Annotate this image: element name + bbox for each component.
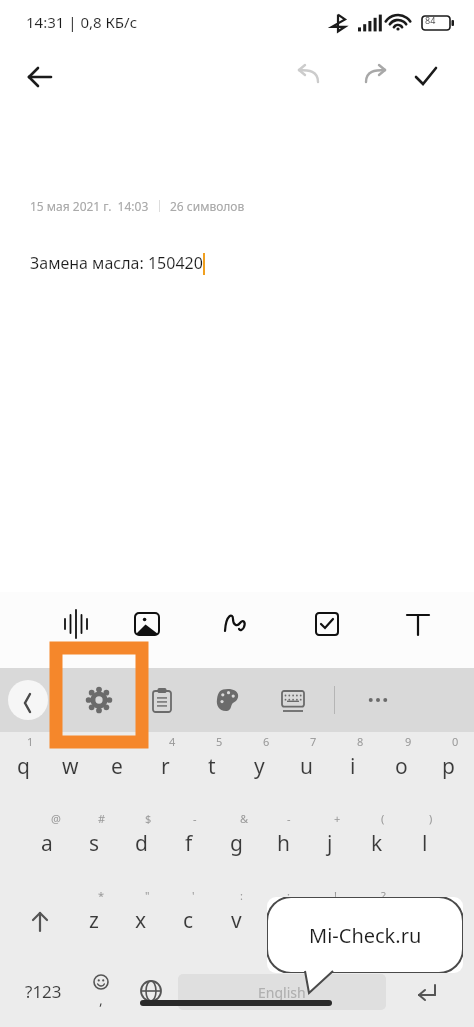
button[interactable]: ?123 bbox=[10, 968, 76, 1014]
staticText: t bbox=[208, 752, 216, 781]
staticText: 7 bbox=[310, 734, 317, 749]
button[interactable]: k bbox=[354, 813, 400, 865]
staticText: g bbox=[230, 829, 243, 858]
button[interactable]: Emoji bbox=[76, 968, 126, 1014]
button[interactable]: Keyboard layout bbox=[271, 678, 315, 722]
staticText: 1 bbox=[27, 734, 34, 749]
button[interactable]: Enter bbox=[392, 968, 462, 1014]
button[interactable]: e bbox=[94, 736, 140, 788]
button[interactable]: Previous bbox=[8, 680, 48, 720]
button[interactable]: v bbox=[213, 890, 259, 942]
staticText: h bbox=[277, 829, 290, 858]
staticText: 5 bbox=[216, 734, 223, 749]
button[interactable]: x bbox=[118, 890, 164, 942]
staticText: 2 bbox=[74, 734, 81, 749]
staticText: @ bbox=[51, 811, 61, 826]
staticText: f bbox=[185, 829, 193, 858]
button[interactable]: j bbox=[307, 813, 353, 865]
button[interactable]: More bbox=[356, 678, 400, 722]
button[interactable]: a bbox=[24, 813, 70, 865]
staticText: Mi-Check.ru bbox=[309, 922, 422, 949]
button[interactable]: Voice bbox=[52, 600, 100, 648]
staticText: q bbox=[17, 752, 30, 781]
staticText: & bbox=[240, 811, 249, 826]
staticText: w bbox=[62, 752, 79, 781]
button[interactable]: z bbox=[71, 890, 117, 942]
staticText: y bbox=[254, 752, 265, 781]
staticText: u bbox=[300, 752, 313, 781]
staticText: e bbox=[111, 752, 123, 781]
button[interactable]: p bbox=[425, 736, 471, 788]
button[interactable]: Save bbox=[404, 55, 448, 99]
staticText: x bbox=[135, 906, 147, 935]
button[interactable]: q bbox=[0, 736, 46, 788]
button[interactable]: i bbox=[330, 736, 376, 788]
staticText: o bbox=[395, 752, 408, 781]
button[interactable]: Theme bbox=[206, 678, 250, 722]
button[interactable]: English bbox=[178, 974, 386, 1010]
button[interactable]: c bbox=[165, 890, 211, 942]
staticText: English bbox=[258, 983, 306, 1002]
staticText: k bbox=[371, 829, 383, 858]
button[interactable]: Back bbox=[18, 55, 62, 99]
button[interactable]: w bbox=[47, 736, 93, 788]
staticText: 84 bbox=[425, 14, 436, 26]
staticText: d bbox=[135, 829, 148, 858]
button[interactable]: l bbox=[402, 813, 448, 865]
staticText: l bbox=[422, 829, 428, 858]
staticText: 15 мая 2021 г. 14:03 bbox=[30, 198, 149, 214]
staticText: ; bbox=[287, 888, 290, 903]
staticText: 26 символов bbox=[170, 198, 245, 214]
staticText: p bbox=[442, 752, 455, 781]
button[interactable]: h bbox=[260, 813, 306, 865]
button[interactable]: y bbox=[236, 736, 282, 788]
staticText: n bbox=[324, 906, 337, 935]
staticText: Замена масла: 150420 bbox=[30, 252, 203, 274]
staticText: ?123 bbox=[25, 980, 62, 1003]
staticText: a bbox=[41, 829, 53, 858]
staticText: 0 bbox=[452, 734, 459, 749]
staticText: v bbox=[231, 906, 242, 935]
button[interactable]: t bbox=[189, 736, 235, 788]
staticText: j bbox=[327, 829, 333, 858]
staticText: $ bbox=[145, 811, 152, 826]
button[interactable]: n bbox=[307, 890, 353, 942]
staticText: ' bbox=[192, 888, 195, 903]
staticText: ) bbox=[429, 811, 433, 826]
button[interactable]: Image bbox=[123, 600, 171, 648]
button[interactable]: u bbox=[283, 736, 329, 788]
staticText: ? bbox=[381, 888, 386, 903]
staticText: - bbox=[287, 811, 291, 826]
button[interactable]: Settings bbox=[77, 678, 121, 722]
staticText: s bbox=[89, 829, 100, 858]
button[interactable]: f bbox=[166, 813, 212, 865]
staticText: c bbox=[183, 906, 194, 935]
button[interactable]: Shift bbox=[12, 896, 68, 948]
staticText: r bbox=[161, 752, 170, 781]
staticText: z bbox=[89, 906, 99, 935]
button[interactable]: Backspace bbox=[408, 896, 464, 948]
staticText: * bbox=[98, 888, 105, 903]
button[interactable]: o bbox=[378, 736, 424, 788]
button[interactable]: m bbox=[354, 890, 400, 942]
button[interactable]: Redo bbox=[354, 55, 398, 99]
button[interactable]: Change language bbox=[126, 968, 176, 1014]
button[interactable]: g bbox=[213, 813, 259, 865]
staticText: 6 bbox=[263, 734, 270, 749]
button[interactable]: Undo bbox=[286, 55, 330, 99]
button[interactable]: Checklist bbox=[303, 600, 351, 648]
button[interactable]: d bbox=[118, 813, 164, 865]
button[interactable]: b bbox=[260, 890, 306, 942]
staticText: + bbox=[334, 811, 341, 826]
button[interactable]: Text format bbox=[394, 600, 442, 648]
button[interactable]: r bbox=[142, 736, 188, 788]
staticText: 8 bbox=[357, 734, 364, 749]
staticText: 9 bbox=[405, 734, 412, 749]
button[interactable]: s bbox=[71, 813, 117, 865]
staticText: - bbox=[193, 811, 197, 826]
button[interactable]: Draw bbox=[212, 600, 260, 648]
button[interactable]: Clipboard bbox=[140, 678, 184, 722]
staticText: ( bbox=[381, 811, 385, 826]
staticText: 14:31 | 0,8 КБ/с bbox=[26, 12, 138, 32]
